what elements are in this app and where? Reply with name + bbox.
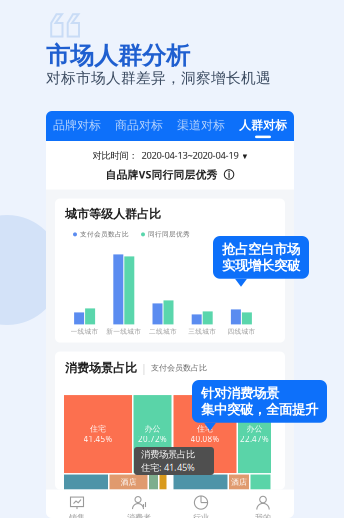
- staticText: 人群对标: [239, 118, 287, 133]
- staticText: 同行同层优秀: [148, 230, 190, 238]
- button[interactable]: 行业: [170, 495, 232, 518]
- staticText: 城市等级人群占比: [65, 207, 161, 221]
- staticText: 抢占空白市场: [222, 241, 300, 257]
- staticText: 对标市场人群差异，洞察增长机遇: [46, 69, 271, 87]
- staticText: 实现增长突破: [222, 257, 300, 274]
- staticText: 针对消费场景: [201, 385, 279, 401]
- staticText: 集中突破，全面提升: [201, 401, 318, 418]
- staticText: 三线城市: [188, 327, 216, 336]
- staticText: 办公: [144, 424, 160, 434]
- staticText: 对比时间： 2020-04-13~2020-04-19 ▾: [92, 149, 247, 161]
- staticText: 四线城市: [227, 327, 255, 336]
- staticText: 二线城市: [149, 327, 177, 336]
- staticText: 销售: [69, 513, 85, 518]
- staticText: 消费者: [127, 513, 151, 518]
- staticText: 商品对标: [115, 118, 163, 133]
- staticText: 消费场景占比: [65, 361, 137, 375]
- staticText: 40.08%: [190, 434, 219, 444]
- button[interactable]: 销售: [46, 495, 108, 518]
- staticText: 22.47%: [240, 434, 269, 444]
- staticText: 品牌对标: [53, 118, 101, 133]
- button[interactable]: 品牌对标: [46, 110, 108, 142]
- staticText: 住宅: [197, 424, 213, 434]
- staticText: 办公: [246, 424, 262, 434]
- staticText: |: [141, 361, 147, 375]
- staticText: 41.45%: [83, 434, 112, 444]
- staticText: 新一线城市: [106, 327, 141, 336]
- staticText: 酒店: [231, 477, 247, 487]
- button[interactable]: 人群对标: [232, 110, 294, 142]
- staticText: 住宅: 41.45%: [141, 461, 195, 473]
- button[interactable]: 消费者: [108, 495, 170, 518]
- staticText: 市场人群分析: [46, 41, 190, 70]
- staticText: 消费场景占比: [141, 449, 195, 460]
- staticText: 酒店: [120, 477, 136, 487]
- staticText: 一线城市: [71, 327, 99, 336]
- staticText: 渠道对标: [177, 118, 225, 133]
- button[interactable]: 商品对标: [108, 110, 170, 142]
- button[interactable]: 渠道对标: [170, 110, 232, 142]
- staticText: 自品牌VS同行同层优秀 ⓘ: [105, 167, 234, 182]
- staticText: 支付会员数占比: [151, 363, 207, 373]
- button[interactable]: 我的: [232, 495, 294, 518]
- staticText: 我的: [255, 513, 271, 518]
- staticText: 支付会员数占比: [80, 230, 129, 238]
- staticText: 住宅: [90, 424, 106, 434]
- staticText: 20.72%: [138, 434, 167, 444]
- staticText: 行业: [193, 513, 209, 518]
